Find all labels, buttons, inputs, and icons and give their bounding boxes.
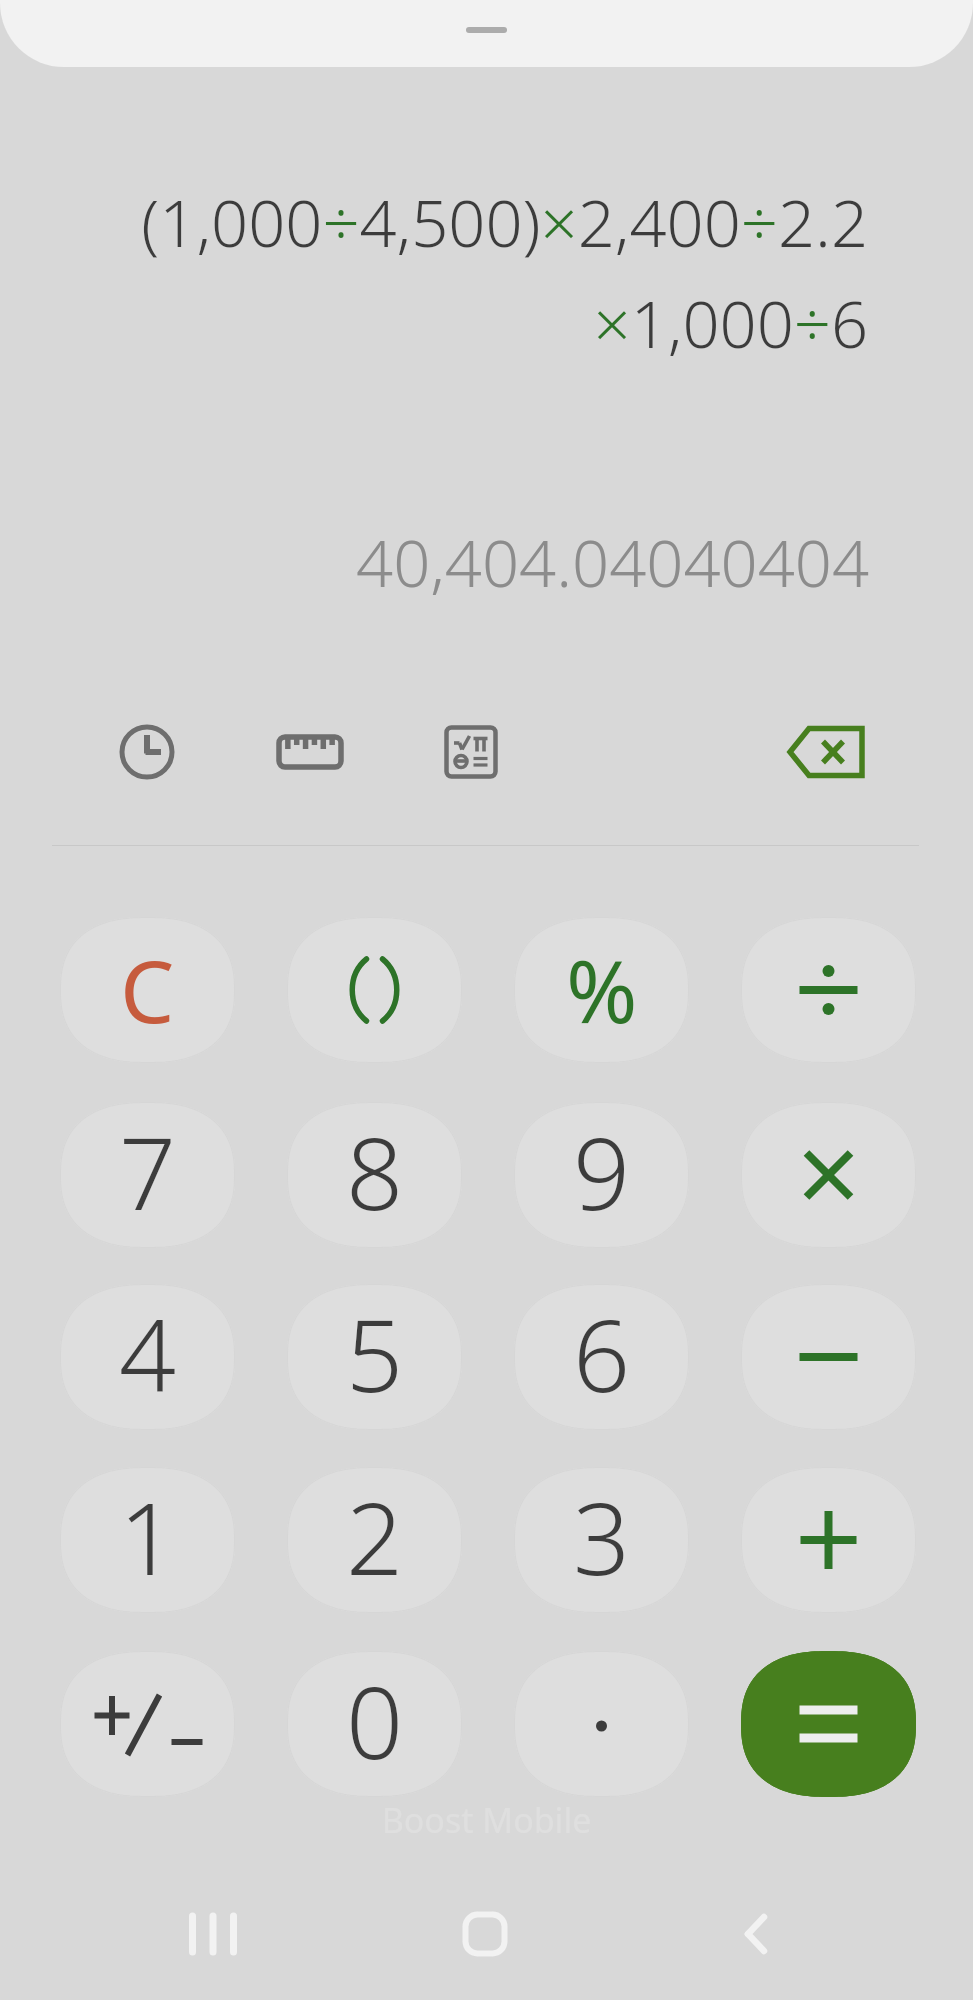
button[interactable]: C	[60, 917, 235, 1063]
button[interactable]: %	[514, 917, 689, 1063]
staticText: C	[120, 931, 175, 1048]
button[interactable]: Add	[741, 1467, 916, 1613]
staticText: 0	[346, 1652, 404, 1788]
staticText: 2	[346, 1468, 404, 1604]
button[interactable]: 7	[60, 1102, 235, 1248]
staticText: (1,000÷4,500)×2,400÷2.2	[0, 178, 868, 267]
button[interactable]: Decimal point	[514, 1651, 689, 1797]
button[interactable]: 3	[514, 1467, 689, 1613]
button[interactable]: Scientific calculator	[431, 712, 511, 792]
staticText: 9	[573, 1103, 631, 1239]
button[interactable]: Back	[706, 1879, 806, 1989]
button[interactable]: Divide	[741, 917, 916, 1063]
staticText: 6	[573, 1285, 631, 1421]
button[interactable]: 1	[60, 1467, 235, 1613]
button[interactable]: 5	[287, 1284, 462, 1430]
staticText: 8	[346, 1103, 404, 1239]
staticText: 40,404.04040404	[0, 518, 869, 607]
button[interactable]: Recent apps	[163, 1879, 263, 1989]
button[interactable]: Backspace	[786, 712, 866, 792]
staticText: 1	[119, 1468, 177, 1604]
staticText: 5	[346, 1285, 404, 1421]
button[interactable]: 8	[287, 1102, 462, 1248]
button[interactable]: 4	[60, 1284, 235, 1430]
staticText: 3	[573, 1468, 631, 1604]
staticText: %	[566, 931, 638, 1048]
button[interactable]: Equals	[741, 1651, 916, 1797]
button[interactable]: History	[107, 712, 187, 792]
button[interactable]: Subtract	[741, 1284, 916, 1430]
button[interactable]: 0	[287, 1651, 462, 1797]
button[interactable]: Parenthesis	[287, 917, 462, 1063]
button[interactable]: Unit converter	[270, 712, 350, 792]
button[interactable]: Home	[435, 1879, 535, 1989]
staticText: 4	[119, 1285, 177, 1421]
button[interactable]: 6	[514, 1284, 689, 1430]
button[interactable]: Plus minus	[60, 1651, 235, 1797]
button[interactable]: 2	[287, 1467, 462, 1613]
button[interactable]: Multiply	[741, 1102, 916, 1248]
staticText: ×1,000÷6	[0, 279, 868, 368]
button[interactable]: 9	[514, 1102, 689, 1248]
staticText: 7	[119, 1103, 177, 1239]
